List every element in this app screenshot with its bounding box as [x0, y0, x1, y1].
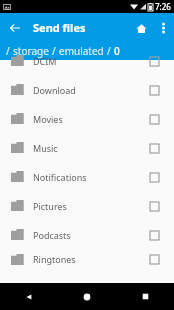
- button[interactable]: Back: [0, 283, 58, 310]
- button[interactable]: Select Movies: [145, 110, 163, 128]
- button[interactable]: Select DCIM: [145, 52, 163, 70]
- staticText: 0: [114, 44, 120, 58]
- staticText: Movies: [33, 113, 145, 125]
- staticText: Music: [33, 142, 145, 154]
- button[interactable]: Music: [0, 133, 174, 162]
- staticText: Pictures: [33, 200, 145, 212]
- button[interactable]: storage: [13, 44, 49, 58]
- button[interactable]: Podcasts: [0, 220, 174, 249]
- button[interactable]: Pictures: [0, 191, 174, 220]
- button[interactable]: Back: [4, 17, 25, 38]
- button[interactable]: DCIM: [0, 46, 174, 75]
- button[interactable]: Recents: [116, 283, 174, 310]
- staticText: Download: [33, 84, 145, 96]
- staticText: Notifications: [33, 171, 145, 183]
- button[interactable]: More options: [152, 17, 174, 39]
- staticText: DCIM: [33, 55, 145, 67]
- staticText: /: [52, 44, 56, 58]
- button[interactable]: Home: [130, 17, 152, 39]
- staticText: /: [107, 44, 111, 58]
- staticText: Ringtones: [33, 253, 145, 265]
- staticText: Send files: [33, 20, 86, 35]
- button[interactable]: Select Download: [145, 81, 163, 99]
- staticText: storage: [13, 44, 49, 58]
- button[interactable]: Select Ringtones: [145, 250, 163, 268]
- button[interactable]: Select Podcasts: [145, 226, 163, 244]
- button[interactable]: Download: [0, 75, 174, 104]
- staticText: 7:26: [155, 1, 171, 12]
- button[interactable]: Home: [58, 283, 116, 310]
- staticText: /: [6, 44, 10, 58]
- button[interactable]: emulated: [59, 44, 104, 58]
- staticText: Podcasts: [33, 229, 145, 241]
- button[interactable]: 0: [114, 44, 120, 58]
- button[interactable]: Select Music: [145, 139, 163, 157]
- staticText: emulated: [59, 44, 104, 58]
- button[interactable]: Select Notifications: [145, 168, 163, 186]
- button[interactable]: Ringtones: [0, 249, 174, 269]
- button[interactable]: Notifications: [0, 162, 174, 191]
- button[interactable]: Movies: [0, 104, 174, 133]
- button[interactable]: Select Pictures: [145, 197, 163, 215]
